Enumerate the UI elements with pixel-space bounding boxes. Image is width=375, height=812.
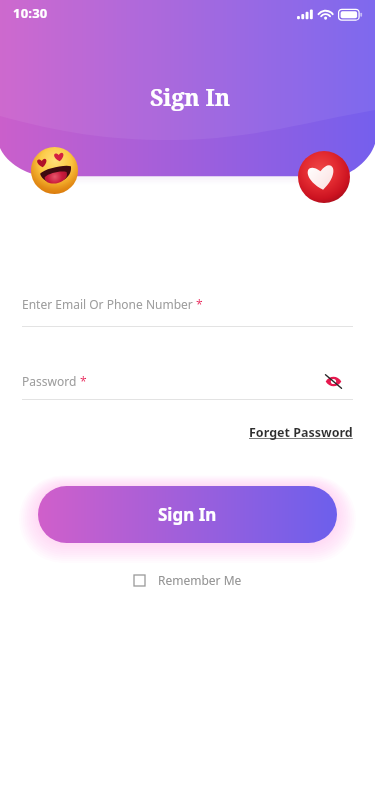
button[interactable]: Remember Me [134, 572, 242, 588]
staticText: Remember Me [158, 572, 242, 588]
staticText: Sign In [158, 503, 217, 526]
staticText: Enter Email Or Phone Number [22, 296, 196, 312]
staticText: Sign In [150, 81, 231, 112]
button[interactable]: Sign In [38, 486, 337, 543]
staticText: Forget Password [249, 424, 353, 441]
staticText: * [196, 296, 203, 312]
button[interactable]: Forget Password [249, 424, 353, 441]
staticText: * [80, 373, 87, 389]
staticText: Password [22, 373, 80, 389]
button[interactable]: Show password [320, 368, 346, 394]
staticText: 10:30 [13, 4, 48, 22]
